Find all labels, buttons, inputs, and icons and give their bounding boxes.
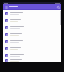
button[interactable] bbox=[3, 10, 61, 17]
button[interactable] bbox=[3, 24, 61, 31]
button[interactable] bbox=[3, 31, 61, 38]
button[interactable] bbox=[3, 17, 61, 24]
button[interactable]: Menu bbox=[4, 5, 8, 9]
button[interactable] bbox=[3, 52, 61, 59]
button[interactable] bbox=[3, 38, 61, 45]
button[interactable] bbox=[3, 59, 61, 62]
button[interactable] bbox=[3, 45, 61, 52]
button[interactable]: Search bbox=[56, 5, 60, 9]
